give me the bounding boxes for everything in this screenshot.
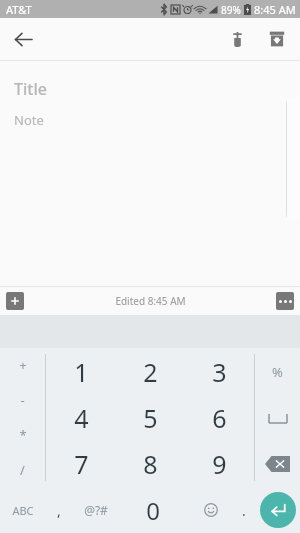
button[interactable]: 1 xyxy=(46,348,116,395)
button[interactable]: Enter xyxy=(260,492,296,528)
staticText: - xyxy=(20,391,25,409)
staticText: * xyxy=(19,426,27,444)
button[interactable]: Title xyxy=(14,78,300,129)
button[interactable]: Space xyxy=(255,395,300,441)
staticText: 5 xyxy=(143,401,158,435)
staticText: 2 xyxy=(143,355,158,389)
button[interactable]: 5 xyxy=(116,395,185,441)
staticText: @?# xyxy=(84,502,108,518)
button[interactable]: 0 xyxy=(118,487,188,533)
button[interactable]: Back xyxy=(4,20,42,58)
button[interactable]: 9 xyxy=(185,441,254,487)
button[interactable]: 8 xyxy=(116,441,185,487)
staticText: 9 xyxy=(212,447,227,481)
staticText: 3 xyxy=(212,355,227,389)
button[interactable]: Backspace xyxy=(255,441,300,487)
button[interactable]: More options xyxy=(276,292,294,310)
staticText: + xyxy=(19,356,27,374)
staticText: 8:45 AM xyxy=(254,2,296,17)
staticText: AT&T xyxy=(6,2,32,17)
button[interactable]: @?# xyxy=(73,487,118,533)
button[interactable]: ABC xyxy=(0,487,45,533)
button[interactable]: * xyxy=(0,417,45,452)
button[interactable]: , xyxy=(45,487,73,533)
staticText: . xyxy=(242,501,246,520)
staticText: % xyxy=(272,363,283,381)
staticText: 4 xyxy=(74,401,89,435)
staticText: , xyxy=(57,501,61,520)
staticText: 1 xyxy=(74,355,89,389)
button[interactable]: / xyxy=(0,452,45,487)
staticText: Note xyxy=(14,111,44,129)
button[interactable]: 3 xyxy=(185,348,254,395)
staticText: Title xyxy=(14,78,47,100)
button[interactable]: Archive xyxy=(260,22,294,56)
button[interactable]: 4 xyxy=(46,395,116,441)
button[interactable]: Emoji xyxy=(188,487,233,533)
button[interactable]: 7 xyxy=(46,441,116,487)
staticText: ABC xyxy=(12,503,34,518)
button[interactable]: . xyxy=(233,487,255,533)
staticText: 0 xyxy=(146,494,160,527)
button[interactable]: + xyxy=(0,348,45,382)
staticText: Edited 8:45 AM xyxy=(115,294,186,308)
staticText: 89% xyxy=(221,3,241,17)
button[interactable]: Pin xyxy=(220,22,254,56)
staticText: 8 xyxy=(143,447,158,481)
button[interactable]: % xyxy=(255,348,300,395)
button[interactable]: 6 xyxy=(185,395,254,441)
staticText: 7 xyxy=(74,447,89,481)
button[interactable]: - xyxy=(0,382,45,417)
button[interactable]: Add xyxy=(6,292,24,310)
staticText: 6 xyxy=(212,401,227,435)
button[interactable]: 2 xyxy=(116,348,185,395)
staticText: / xyxy=(20,461,25,479)
